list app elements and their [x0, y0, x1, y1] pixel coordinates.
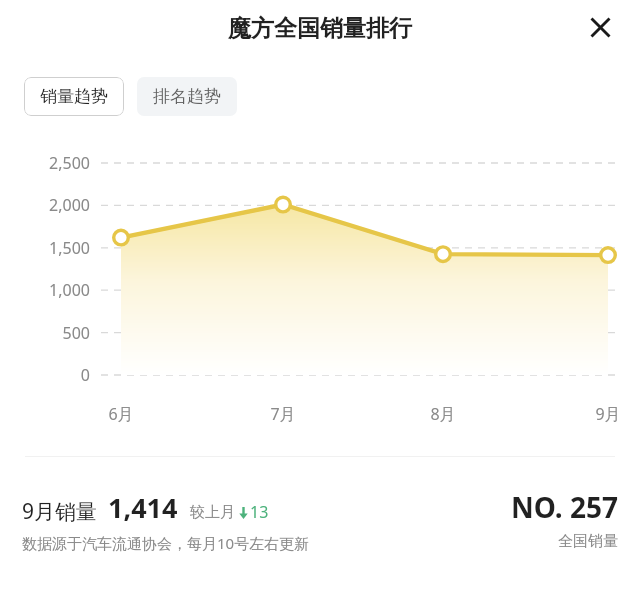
- staticText: 较上月: [190, 503, 235, 522]
- staticText: 7月: [253, 403, 313, 425]
- staticText: 500: [20, 322, 90, 344]
- staticText: 8月: [413, 403, 473, 425]
- button[interactable]: 销量趋势: [24, 77, 124, 116]
- staticText: 13: [250, 501, 269, 523]
- staticText: 销量趋势: [40, 86, 108, 107]
- button[interactable]: Close: [578, 5, 622, 49]
- staticText: 1,000: [20, 279, 90, 301]
- staticText: 数据源于汽车流通协会，每月10号左右更新: [22, 533, 310, 553]
- staticText: 2,000: [20, 194, 90, 216]
- staticText: NO. 257: [511, 488, 618, 526]
- staticText: 1,500: [20, 237, 90, 259]
- staticText: 魔方全国销量排行: [0, 14, 640, 43]
- staticText: 0: [20, 364, 90, 386]
- staticText: 排名趋势: [153, 86, 221, 107]
- staticText: 9月: [578, 403, 638, 425]
- staticText: 1,414: [108, 489, 178, 526]
- staticText: 全国销量: [558, 532, 618, 551]
- staticText: 6月: [91, 403, 151, 425]
- staticText: 9月销量: [22, 497, 98, 526]
- button[interactable]: 排名趋势: [137, 77, 237, 116]
- staticText: 2,500: [20, 152, 90, 174]
